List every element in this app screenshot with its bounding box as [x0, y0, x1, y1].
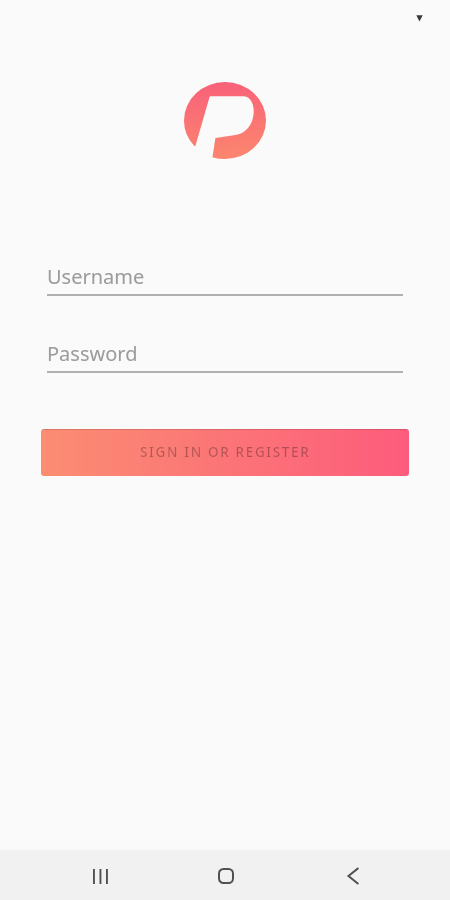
- staticText: Password: [47, 340, 138, 367]
- button[interactable]: Username: [47, 263, 403, 296]
- button[interactable]: Password: [47, 340, 403, 373]
- button[interactable]: Recent apps: [76, 852, 124, 900]
- staticText: SIGN IN OR REGISTER: [140, 443, 311, 461]
- button[interactable]: SIGN IN OR REGISTER: [41, 429, 409, 476]
- staticText: Username: [47, 263, 145, 290]
- button[interactable]: Back: [328, 852, 376, 900]
- button[interactable]: Home: [202, 852, 250, 900]
